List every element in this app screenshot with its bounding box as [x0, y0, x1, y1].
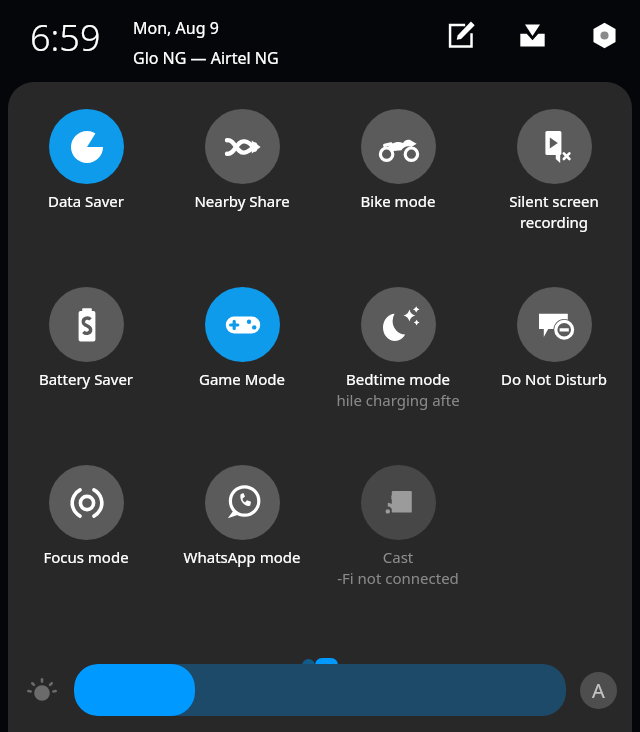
- button[interactable]: Cast: [320, 457, 476, 588]
- button[interactable]: Bike mode: [320, 101, 476, 211]
- staticText: Game Mode: [164, 369, 320, 389]
- button[interactable]: Edit: [438, 13, 482, 57]
- button[interactable]: Silent screen recording: [476, 101, 632, 233]
- staticText: Glo NG — Airtel NG: [133, 47, 279, 69]
- button[interactable]: Focus mode: [8, 457, 164, 567]
- staticText: Battery Saver: [8, 369, 164, 389]
- button[interactable]: Battery Saver: [8, 279, 164, 389]
- button[interactable]: Settings: [582, 13, 626, 57]
- staticText: Bedtime mode: [320, 369, 476, 389]
- staticText: Nearby Share: [164, 191, 320, 211]
- button[interactable]: Bedtime mode: [320, 279, 476, 410]
- button[interactable]: Brightness slider: [74, 664, 566, 716]
- button[interactable]: Brightness: [20, 668, 64, 712]
- staticText: Mon, Aug 9: [133, 17, 219, 39]
- button[interactable]: Auto brightness: [576, 668, 620, 712]
- staticText: Focus mode: [8, 547, 164, 567]
- staticText: Cast: [320, 547, 476, 567]
- button[interactable]: Notification history: [510, 13, 554, 57]
- staticText: Data Saver: [8, 191, 164, 211]
- staticText: hile charging afte: [320, 390, 476, 410]
- button[interactable]: WhatsApp mode: [164, 457, 320, 567]
- button[interactable]: Do Not Disturb: [476, 279, 632, 389]
- button[interactable]: Game Mode: [164, 279, 320, 389]
- button[interactable]: Nearby Share: [164, 101, 320, 211]
- staticText: WhatsApp mode: [164, 547, 320, 567]
- staticText: -Fi not connected: [320, 568, 476, 588]
- button[interactable]: Data Saver: [8, 101, 164, 211]
- staticText: Do Not Disturb: [476, 369, 632, 389]
- staticText: A: [592, 677, 605, 704]
- staticText: 6:59: [30, 13, 101, 62]
- staticText: Silent screen recording: [476, 191, 632, 233]
- staticText: Bike mode: [320, 191, 476, 211]
